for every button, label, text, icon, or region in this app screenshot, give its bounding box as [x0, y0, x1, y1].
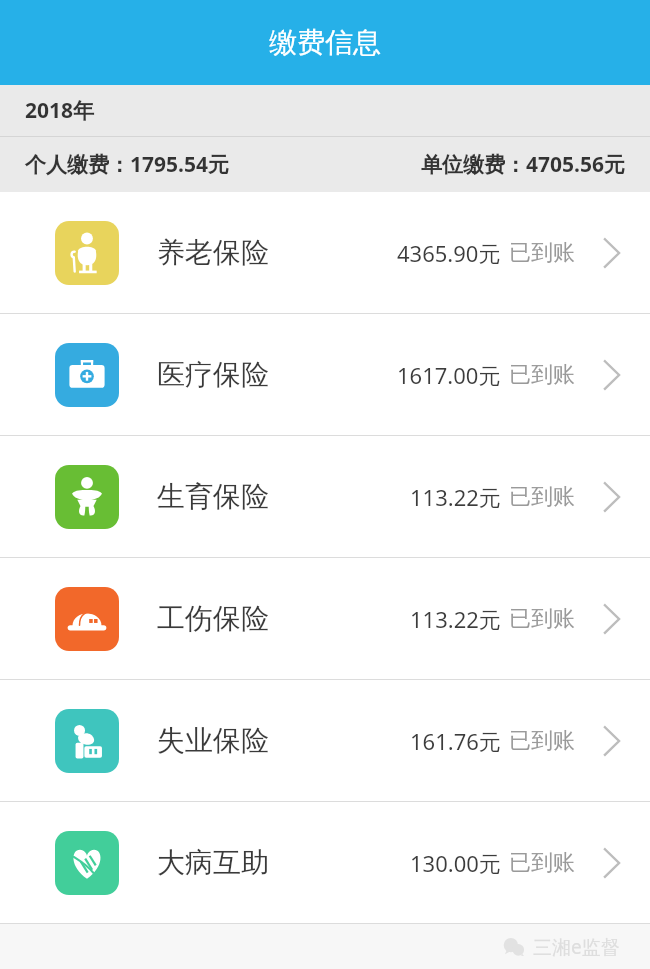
staticText: 已到账 [509, 605, 575, 633]
staticText: 医疗保险 [157, 357, 269, 392]
staticText: 113.22元 [410, 482, 501, 512]
button[interactable]: 查看医疗保险 详情 [599, 355, 625, 395]
button[interactable]: 大病互助 [0, 802, 650, 923]
staticText: 已到账 [509, 361, 575, 389]
button[interactable]: 医疗保险 [0, 314, 650, 435]
button[interactable]: 查看失业保险 详情 [599, 721, 625, 761]
staticText: 大病互助 [157, 845, 269, 880]
staticText: 已到账 [509, 483, 575, 511]
staticText: 工伤保险 [157, 601, 269, 636]
button[interactable]: 查看工伤保险 详情 [599, 599, 625, 639]
staticText: 已到账 [509, 727, 575, 755]
staticText: 养老保险 [157, 235, 269, 270]
staticText: 单位缴费：4705.56元 [421, 150, 625, 179]
staticText: 个人缴费：1795.54元 [25, 150, 229, 179]
button[interactable]: 养老保险 [0, 192, 650, 313]
button[interactable]: 生育保险 [0, 436, 650, 557]
button[interactable]: 2018年 [0, 85, 650, 136]
button[interactable]: 失业保险 [0, 680, 650, 801]
button[interactable]: 工伤保险 [0, 558, 650, 679]
staticText: 113.22元 [410, 604, 501, 634]
button[interactable]: 查看大病互助 详情 [599, 843, 625, 883]
staticText: 三湘e监督 [533, 934, 620, 960]
staticText: 已到账 [509, 849, 575, 877]
staticText: 161.76元 [410, 726, 501, 756]
staticText: 已到账 [509, 239, 575, 267]
staticText: 失业保险 [157, 723, 269, 758]
staticText: 4365.90元 [397, 238, 501, 268]
button[interactable]: 查看生育保险 详情 [599, 477, 625, 517]
staticText: 生育保险 [157, 479, 269, 514]
staticText: 2018年 [25, 96, 95, 125]
staticText: 1617.00元 [397, 360, 501, 390]
staticText: 130.00元 [410, 848, 501, 878]
staticText: 缴费信息 [269, 25, 381, 60]
button[interactable]: 查看养老保险 详情 [599, 233, 625, 273]
